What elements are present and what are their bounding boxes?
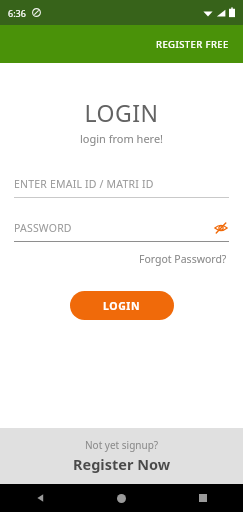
button[interactable]: LOGIN xyxy=(70,291,174,320)
button[interactable]: Recent apps xyxy=(162,484,243,512)
staticText: 6:36 xyxy=(8,7,26,19)
button[interactable]: PASSWORD xyxy=(14,218,229,238)
button[interactable]: REGISTER FREE xyxy=(142,30,243,59)
staticText: Register Now xyxy=(73,454,171,474)
staticText: LOGIN xyxy=(0,97,243,128)
button[interactable]: Not yet signup? xyxy=(0,428,243,484)
staticText: PASSWORD xyxy=(14,221,72,235)
button[interactable]: ENTER EMAIL ID / MATRI ID xyxy=(14,174,229,194)
staticText: REGISTER FREE xyxy=(156,38,229,51)
button[interactable]: Back xyxy=(0,484,81,512)
button[interactable]: Forgot Password? xyxy=(137,249,229,269)
staticText: Not yet signup? xyxy=(85,438,159,452)
staticText: login from here! xyxy=(0,131,243,146)
staticText: LOGIN xyxy=(103,299,141,313)
staticText: ENTER EMAIL ID / MATRI ID xyxy=(14,177,154,191)
button[interactable]: Home xyxy=(81,484,162,512)
button[interactable]: Show password xyxy=(213,220,229,236)
staticText: Forgot Password? xyxy=(139,252,227,266)
